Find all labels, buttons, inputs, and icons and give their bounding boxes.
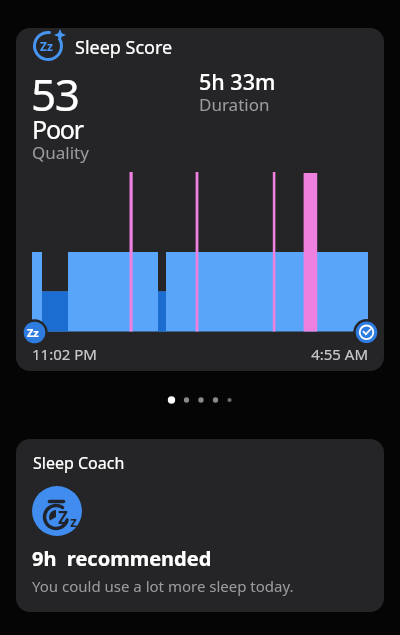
button[interactable] xyxy=(16,439,384,612)
staticText: 53 xyxy=(31,64,79,124)
staticText: Z xyxy=(58,506,68,529)
staticText: You could use a lot more sleep today. xyxy=(32,576,294,596)
button[interactable] xyxy=(32,486,82,536)
staticText: Poor xyxy=(32,112,83,146)
staticText: z xyxy=(70,512,77,531)
staticText: Quality xyxy=(32,141,89,164)
staticText: Zz xyxy=(27,325,39,340)
staticText: 9h recommended xyxy=(32,545,212,572)
button[interactable] xyxy=(16,28,384,371)
staticText: Sleep Coach xyxy=(33,452,125,474)
staticText: Duration xyxy=(199,93,270,116)
staticText: 11:02 PM xyxy=(32,344,97,364)
staticText: Zz xyxy=(40,38,53,54)
staticText: Sleep Score xyxy=(75,35,173,60)
staticText: 4:55 AM xyxy=(311,344,368,364)
staticText: 5h 33m xyxy=(199,67,276,96)
